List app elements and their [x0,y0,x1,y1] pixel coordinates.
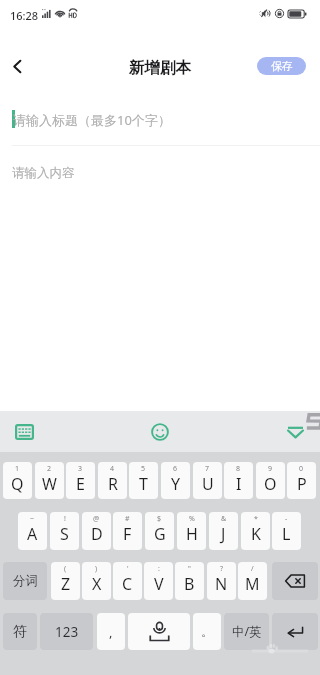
staticText: T [139,473,148,495]
staticText: 分词 [13,573,38,589]
staticText: " [188,564,191,574]
button[interactable]: $ [145,512,174,550]
staticText: U [202,473,214,495]
button[interactable]: * [241,512,270,550]
staticText: ) [95,564,98,574]
staticText: 中/英 [232,623,262,640]
staticText: 16:28 [10,8,39,23]
button[interactable]: 5 [129,462,158,499]
button[interactable]: / [238,562,267,600]
staticText: M [245,573,260,595]
staticText: N [215,573,228,595]
staticText: 9 [268,464,273,474]
staticText: K [251,523,261,545]
button[interactable]: 4 [98,462,127,499]
button[interactable]: Voice input [128,613,190,650]
button[interactable]: ) [82,562,111,600]
button[interactable]: Hide keyboard [271,411,319,452]
button[interactable]: : [144,562,173,600]
staticText: L [282,523,291,545]
staticText: S [60,523,69,545]
button[interactable]: ' [113,562,142,600]
staticText: - [285,514,288,524]
staticText: ' [127,564,129,574]
button[interactable]: 1 [3,462,32,499]
staticText: D [91,523,103,545]
staticText: 1 [15,464,20,474]
button[interactable]: ( [51,562,80,600]
staticText: ! [64,514,66,524]
button[interactable]: % [177,512,206,550]
staticText: 7 [205,464,210,474]
staticText: 。 [201,624,213,639]
button[interactable]: 3 [66,462,95,499]
button[interactable]: ? [207,562,236,600]
staticText: ( [64,564,67,574]
staticText: B [184,573,195,595]
staticText: A [27,523,38,545]
staticText: 6 [173,464,178,474]
staticText: Y [171,473,181,495]
staticText: J [221,523,226,545]
button[interactable]: Keyboard layout [0,411,48,452]
staticText: F [123,523,132,545]
staticText: I [236,473,242,495]
staticText: ~ [30,514,35,524]
staticText: 新增剧本 [129,58,191,78]
staticText: * [254,514,258,524]
staticText: W [42,473,57,495]
staticText: G [154,523,166,545]
staticText: 8 [236,464,241,474]
staticText: 请输入标题（最多10个字） [13,111,171,129]
button[interactable]: 分词 [3,562,47,600]
button[interactable]: Backspace [272,562,318,600]
staticText: # [125,514,130,524]
button[interactable]: Emoji [136,411,184,452]
staticText: O [264,473,277,495]
staticText: Q [11,473,24,495]
button[interactable]: 8 [224,462,253,499]
staticText: C [122,573,133,595]
button[interactable]: Back [0,42,40,90]
button[interactable]: ~ [18,512,47,550]
staticText: / [251,564,254,574]
button[interactable]: , [97,613,125,650]
staticText: Z [61,573,71,595]
staticText: 符 [13,623,27,641]
button[interactable]: 6 [161,462,190,499]
button[interactable]: Enter [272,613,318,650]
staticText: V [154,573,164,595]
button[interactable]: 2 [35,462,64,499]
button[interactable]: - [272,512,301,550]
staticText: R [108,473,118,495]
staticText: % [189,514,195,524]
button[interactable]: 7 [193,462,222,499]
staticText: E [76,473,85,495]
button[interactable]: @ [82,512,111,550]
staticText: 请输入内容 [12,165,75,181]
button[interactable]: # [113,512,142,550]
staticText: 2 [47,464,52,474]
staticText: @ [93,514,100,524]
button[interactable]: 符 [3,613,37,650]
staticText: X [92,573,102,595]
button[interactable]: 0 [287,462,316,499]
staticText: $ [157,514,162,524]
staticText: 0 [299,464,304,474]
staticText: ? [220,564,224,574]
button[interactable]: 保存 [257,57,306,75]
button[interactable]: ! [50,512,79,550]
button[interactable]: & [209,512,238,550]
staticText: 4 [110,464,115,474]
button[interactable]: 。 [193,613,221,650]
staticText: , [109,623,113,641]
staticText: : [158,564,160,574]
staticText: 123 [55,623,79,641]
button[interactable]: 123 [40,613,93,650]
button[interactable]: 9 [256,462,285,499]
staticText: 3 [78,464,83,474]
staticText: 保存 [271,59,293,73]
button[interactable]: 中/英 [224,613,269,650]
staticText: P [297,473,307,495]
button[interactable]: " [175,562,204,600]
